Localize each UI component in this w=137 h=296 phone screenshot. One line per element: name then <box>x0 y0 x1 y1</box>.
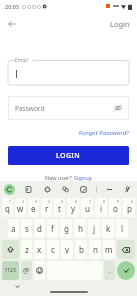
staticText: 1 <box>9 199 12 204</box>
staticText: o <box>113 203 118 214</box>
staticText: @ <box>23 266 30 276</box>
staticText: i <box>100 203 103 214</box>
staticText: a <box>11 223 16 234</box>
staticText: h <box>78 223 83 234</box>
staticText: s <box>25 223 29 234</box>
button[interactable]: 3 <box>28 198 39 217</box>
button[interactable]: z <box>21 240 32 259</box>
button[interactable]: @ <box>21 261 32 280</box>
button[interactable]: Shift <box>2 240 19 259</box>
button[interactable]: Translate <box>78 184 89 195</box>
staticText: y <box>71 203 76 214</box>
button[interactable]: x <box>34 240 45 259</box>
staticText: Password <box>15 104 45 113</box>
button[interactable]: Password <box>8 96 129 120</box>
staticText: q <box>5 203 10 214</box>
button[interactable]: k <box>102 219 114 238</box>
staticText: c <box>51 244 55 255</box>
staticText: z <box>25 244 29 255</box>
button[interactable]: Forgot Password? <box>79 129 129 137</box>
button[interactable]: a <box>8 219 19 238</box>
staticText: p <box>127 203 132 214</box>
staticText: Signup <box>74 174 93 181</box>
button[interactable]: 1 <box>2 198 13 217</box>
button[interactable]: . <box>104 261 115 280</box>
staticText: ?123 <box>5 267 16 274</box>
button[interactable]: 7 <box>81 198 93 217</box>
button[interactable]: 0 <box>123 198 135 217</box>
staticText: Email <box>15 57 28 64</box>
button[interactable]: Google Assistant <box>4 184 15 195</box>
staticText: w <box>17 203 24 214</box>
button[interactable]: Email <box>8 57 129 85</box>
staticText: 3 <box>35 199 38 204</box>
button[interactable]: Signup <box>74 174 93 181</box>
button[interactable]: Back <box>5 17 19 31</box>
button[interactable]: 4 <box>41 198 52 217</box>
button[interactable]: 8 <box>95 198 107 217</box>
button[interactable]: Emoji <box>34 261 45 280</box>
button[interactable]: Login <box>110 19 130 29</box>
button[interactable]: 9 <box>109 198 121 217</box>
button[interactable]: Voice input <box>122 184 133 195</box>
staticText: 8 <box>103 199 106 204</box>
button[interactable]: g <box>60 219 72 238</box>
button[interactable]: LOGIN <box>8 146 129 165</box>
button[interactable]: 5 <box>54 198 65 217</box>
button[interactable]: f <box>47 219 58 238</box>
button[interactable]: s <box>21 219 32 238</box>
button[interactable]: Backspace <box>117 240 135 259</box>
staticText: e <box>31 203 36 214</box>
staticText: t <box>58 203 61 214</box>
staticText: 6 <box>75 199 78 204</box>
button[interactable]: Stickers <box>60 184 71 195</box>
staticText: u <box>85 203 90 214</box>
staticText: j <box>93 223 96 234</box>
button[interactable]: 6 <box>67 198 79 217</box>
staticText: r <box>45 203 49 214</box>
staticText: New user? <box>45 174 74 181</box>
staticText: l <box>121 223 124 234</box>
staticText: 7 <box>89 199 92 204</box>
staticText: 4 <box>48 199 51 204</box>
button[interactable]: Settings <box>42 184 53 195</box>
button[interactable]: n <box>89 240 101 259</box>
button[interactable]: j <box>88 219 100 238</box>
staticText: n <box>93 244 98 255</box>
button[interactable]: Enter <box>117 261 135 280</box>
button[interactable]: h <box>74 219 86 238</box>
staticText: k <box>106 223 111 234</box>
staticText: f <box>51 223 54 234</box>
staticText: g <box>64 223 69 234</box>
button[interactable]: 2 <box>15 198 26 217</box>
staticText: 5 <box>61 199 64 204</box>
button[interactable]: v <box>61 240 73 259</box>
staticText: Forgot Password? <box>79 129 129 137</box>
button[interactable]: b <box>75 240 87 259</box>
staticText: LOGIN <box>56 151 81 161</box>
button[interactable]: l <box>116 219 128 238</box>
staticText: 2 <box>22 199 25 204</box>
staticText: . <box>109 266 111 276</box>
staticText: Login <box>110 19 130 29</box>
staticText: v <box>65 244 70 255</box>
button[interactable]: c <box>47 240 59 259</box>
staticText: x <box>37 244 42 255</box>
staticText: m <box>105 244 113 255</box>
button[interactable]: ?123 <box>2 261 19 280</box>
button[interactable]: Show password <box>112 102 124 114</box>
staticText: d <box>37 223 42 234</box>
button[interactable]: m <box>103 240 115 259</box>
staticText: b <box>79 244 84 255</box>
staticText: 20:05 <box>5 3 20 10</box>
button[interactable]: More <box>104 184 115 195</box>
staticText: 0 <box>131 199 134 204</box>
button[interactable]: d <box>34 219 45 238</box>
staticText: 9 <box>117 199 120 204</box>
button[interactable]: Clipboard <box>23 184 34 195</box>
button[interactable]: Hide keyboard <box>13 282 22 291</box>
